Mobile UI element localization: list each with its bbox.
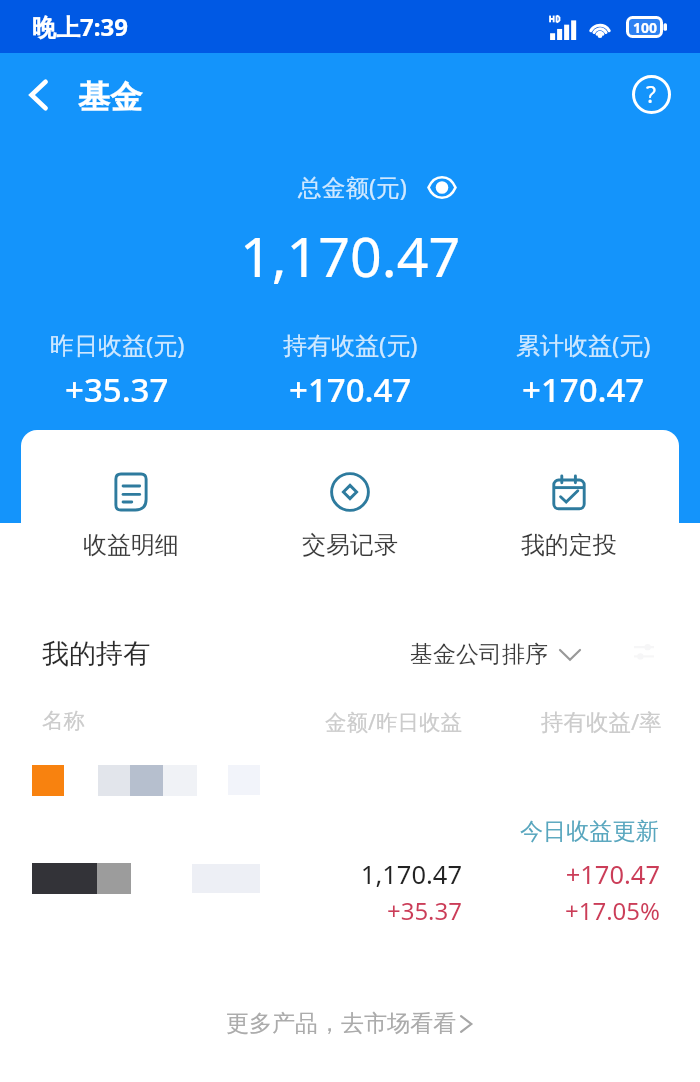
staticText: 基金公司排序	[410, 640, 548, 669]
staticText: 我的定投	[521, 530, 617, 560]
staticText: 更多产品，去市场看看	[226, 1009, 456, 1038]
staticText: 累计收益(元)	[516, 328, 651, 361]
staticText: 1,170.47	[300, 857, 462, 892]
staticText: 基金	[78, 77, 142, 117]
staticText: 今日收益更新	[456, 817, 659, 846]
staticText: ?	[646, 78, 656, 109]
button[interactable]: 收益明细	[61, 466, 201, 564]
staticText: 1,170.47	[240, 218, 461, 294]
button[interactable]: Toggle amount visibility	[426, 171, 458, 203]
staticText: +35.37	[300, 894, 462, 927]
staticText: 昨日收益(元)	[50, 328, 185, 361]
staticText: 持有收益/率	[541, 706, 662, 737]
staticText: +17.05%	[498, 894, 660, 927]
button[interactable]: 更多产品，去市场看看	[0, 1009, 700, 1038]
button[interactable]: 基金公司排序	[404, 634, 586, 675]
button[interactable]: Fund holding detail	[0, 748, 700, 938]
button[interactable]: Help	[628, 71, 674, 117]
staticText: 收益明细	[83, 530, 179, 560]
staticText: 晚上7:39	[32, 10, 128, 43]
staticText: 总金额(元)	[298, 171, 407, 203]
staticText: 金额/昨日收益	[325, 707, 462, 736]
staticText: 交易记录	[302, 530, 398, 560]
staticText: +170.47	[522, 367, 645, 412]
button[interactable]: 交易记录	[280, 466, 420, 564]
staticText: 我的持有	[42, 637, 150, 671]
button[interactable]: Back	[17, 73, 61, 117]
staticText: +170.47	[498, 857, 660, 892]
staticText: +35.37	[65, 367, 169, 412]
staticText: 100	[627, 18, 663, 37]
staticText: 持有收益(元)	[283, 328, 418, 361]
button[interactable]: 我的定投	[499, 466, 639, 564]
staticText: 名称	[42, 707, 85, 734]
staticText: +170.47	[289, 367, 412, 412]
